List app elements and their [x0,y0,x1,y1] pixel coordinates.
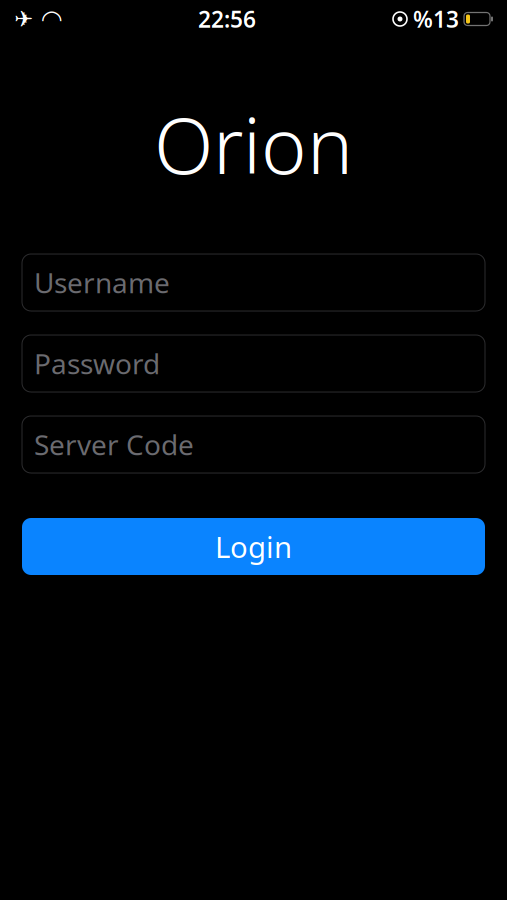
button[interactable]: Username [22,254,485,311]
staticText: Username [34,264,170,301]
button[interactable]: Server Code [22,416,485,473]
staticText: Login [215,527,292,566]
staticText: Server Code [34,426,194,463]
staticText: 22:56 [198,4,256,34]
staticText: Password [34,345,160,382]
staticText: ◠ [42,5,61,33]
button[interactable]: Login [22,518,485,575]
staticText: ✈ [14,6,33,32]
button[interactable]: Password [22,335,485,392]
staticText: Orion [154,93,353,195]
staticText: %13 [413,4,459,34]
